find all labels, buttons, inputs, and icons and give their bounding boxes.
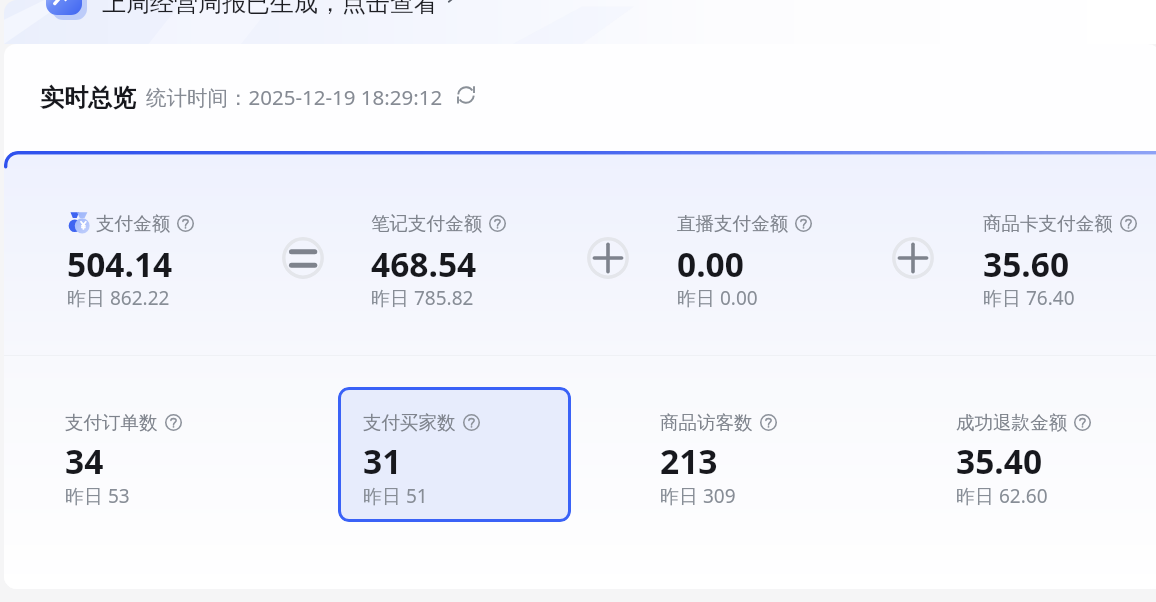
button[interactable]: 加: [587, 237, 629, 279]
staticText: 34: [65, 438, 104, 484]
button[interactable]: 支付买家数: [337, 387, 570, 522]
staticText: 昨日 76.40: [983, 285, 1075, 311]
staticText: 468.54: [371, 241, 477, 287]
button[interactable]: 成功退款金额: [930, 387, 1156, 522]
staticText: 35.40: [956, 438, 1043, 484]
staticText: 昨日 62.60: [956, 483, 1048, 509]
staticText: 直播支付金额: [677, 212, 788, 235]
staticText: 商品访客数: [660, 411, 753, 434]
staticText: 统计时间：2025-12-19 18:29:12: [146, 83, 443, 111]
button[interactable]: 支付买家数: [338, 387, 571, 522]
button[interactable]: 等于: [282, 237, 324, 279]
button[interactable]: 商品卡支付金额: [957, 188, 1156, 323]
staticText: 0.00: [677, 241, 744, 287]
staticText: 31: [363, 438, 402, 484]
staticText: 支付订单数: [65, 411, 158, 434]
button[interactable]: 笔记支付金额: [345, 188, 578, 323]
button[interactable]: 加: [892, 237, 934, 279]
staticText: 昨日 309: [660, 483, 736, 509]
button[interactable]: 商品访客数: [634, 387, 867, 522]
staticText: 35.60: [983, 241, 1070, 287]
staticText: 支付买家数: [363, 411, 456, 434]
staticText: 笔记支付金额: [371, 212, 482, 235]
staticText: 实时总览: [40, 83, 136, 113]
staticText: 昨日 785.82: [371, 285, 474, 311]
staticText: 支付金额: [96, 212, 170, 235]
button[interactable]: 支付订单数: [39, 387, 272, 522]
button[interactable]: 支付金额: [41, 188, 274, 323]
staticText: 成功退款金额: [956, 411, 1067, 434]
staticText: 昨日 51: [363, 483, 428, 509]
staticText: 213: [660, 438, 718, 484]
staticText: 上周经营周报已生成，点击查看: [102, 0, 438, 18]
staticText: 昨日 862.22: [67, 285, 170, 311]
staticText: 504.14: [67, 241, 173, 287]
button[interactable]: 直播支付金额: [651, 188, 884, 323]
staticText: 昨日 0.00: [677, 285, 758, 311]
staticText: 商品卡支付金额: [983, 212, 1113, 235]
button[interactable]: 刷新: [455, 84, 477, 106]
staticText: 昨日 53: [65, 483, 130, 509]
button[interactable]: 上周经营周报已生成，点击查看: [4, 0, 1156, 44]
